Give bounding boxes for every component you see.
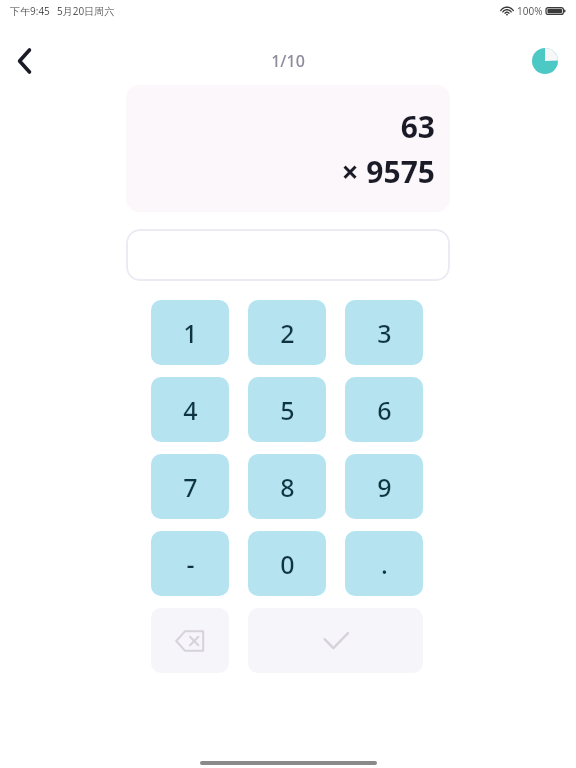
- staticText: 2: [280, 316, 295, 350]
- staticText: 6: [377, 393, 392, 427]
- staticText: 8: [280, 470, 295, 504]
- staticText: 4: [183, 393, 198, 427]
- button[interactable]: -: [151, 531, 229, 596]
- staticText: 5: [280, 393, 295, 427]
- button[interactable]: Progress: [529, 45, 561, 77]
- button[interactable]: .: [345, 531, 423, 596]
- staticText: × 9575: [341, 151, 435, 192]
- button[interactable]: 3: [345, 300, 423, 365]
- button[interactable]: Back: [6, 42, 44, 80]
- staticText: -: [186, 547, 195, 581]
- button[interactable]: 0: [248, 531, 326, 596]
- button[interactable]: 5: [248, 377, 326, 442]
- button[interactable]: 7: [151, 454, 229, 519]
- staticText: 9: [377, 470, 392, 504]
- button[interactable]: 6: [345, 377, 423, 442]
- staticText: 1/10: [271, 50, 305, 72]
- staticText: 7: [183, 470, 198, 504]
- staticText: 100%: [517, 4, 543, 18]
- staticText: 63: [400, 106, 435, 147]
- button[interactable]: 9: [345, 454, 423, 519]
- staticText: 3: [377, 316, 392, 350]
- button[interactable]: 4: [151, 377, 229, 442]
- button[interactable]: [126, 229, 450, 281]
- staticText: 5月20日周六: [57, 4, 115, 18]
- staticText: .: [381, 547, 388, 581]
- staticText: 0: [280, 547, 295, 581]
- staticText: 1: [183, 316, 198, 350]
- button[interactable]: 1: [151, 300, 229, 365]
- button[interactable]: Backspace: [151, 608, 229, 673]
- button[interactable]: 8: [248, 454, 326, 519]
- staticText: 下午9:45: [10, 4, 50, 18]
- button[interactable]: 2: [248, 300, 326, 365]
